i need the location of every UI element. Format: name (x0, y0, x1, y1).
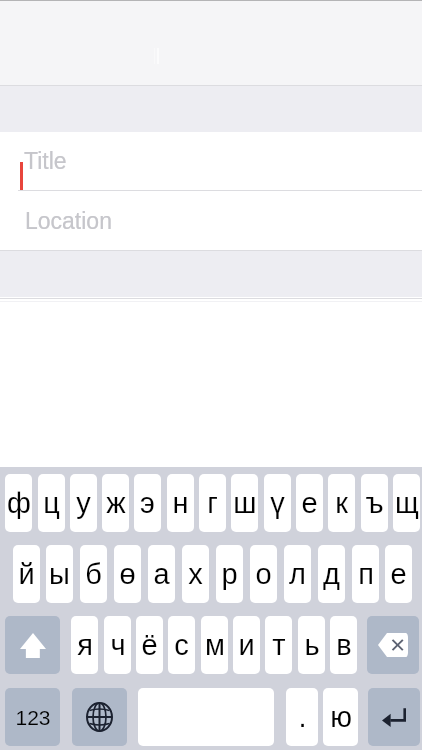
button[interactable]: л (284, 545, 311, 603)
button[interactable]: с (168, 616, 195, 674)
staticText: . (298, 701, 307, 733)
button[interactable]: Backspace (367, 616, 419, 674)
button[interactable]: ш (231, 474, 258, 532)
staticText: й (18, 558, 35, 590)
staticText: 123 (15, 706, 51, 729)
staticText: о (255, 558, 272, 590)
button[interactable]: 123 (5, 688, 60, 746)
staticText: к (335, 487, 348, 519)
button[interactable] (0, 0, 422, 85)
button[interactable]: о (250, 545, 277, 603)
button[interactable]: е (296, 474, 323, 532)
staticText: с (174, 629, 189, 661)
button[interactable]: н (167, 474, 194, 532)
staticText: е (390, 558, 407, 590)
button[interactable]: и (233, 616, 260, 674)
button[interactable]: ё (136, 616, 163, 674)
button[interactable]: к (328, 474, 355, 532)
button[interactable]: р (216, 545, 243, 603)
staticText: ш (233, 487, 257, 519)
staticText: Location (25, 208, 112, 234)
staticText: ц (43, 487, 60, 519)
button[interactable]: Shift (5, 616, 60, 674)
staticText: а (153, 558, 170, 590)
staticText: г (207, 487, 218, 519)
staticText: ъ (365, 487, 384, 519)
button[interactable]: э (134, 474, 161, 532)
staticText: щ (395, 487, 419, 519)
staticText: ь (304, 629, 320, 661)
button[interactable]: ы (46, 545, 73, 603)
button[interactable]: Return (368, 688, 420, 746)
button[interactable]: х (182, 545, 209, 603)
button[interactable]: ф (5, 474, 32, 532)
button[interactable]: д (318, 545, 345, 603)
button[interactable]: й (13, 545, 40, 603)
button[interactable]: у (70, 474, 97, 532)
staticText: я (77, 629, 93, 661)
staticText: х (188, 558, 203, 590)
button[interactable]: ү (264, 474, 291, 532)
button[interactable]: т (265, 616, 292, 674)
button[interactable]: а (148, 545, 175, 603)
staticText: ю (330, 701, 352, 733)
staticText: ө (119, 558, 136, 590)
staticText: ч (110, 629, 126, 661)
button[interactable]: щ (393, 474, 420, 532)
staticText: в (336, 629, 352, 661)
staticText: р (221, 558, 238, 590)
button[interactable]: в (330, 616, 357, 674)
staticText: е (301, 487, 318, 519)
button[interactable]: ь (298, 616, 325, 674)
button[interactable]: . (286, 688, 318, 746)
staticText: б (85, 558, 102, 590)
staticText: и (238, 629, 255, 661)
staticText: ж (106, 487, 126, 519)
staticText: ф (7, 487, 31, 519)
button[interactable]: ж (102, 474, 129, 532)
staticText: ы (49, 558, 70, 590)
button[interactable]: Location (0, 191, 422, 250)
button[interactable]: ю (323, 688, 358, 746)
button[interactable]: м (201, 616, 228, 674)
button[interactable]: ө (114, 545, 141, 603)
staticText: д (323, 558, 340, 590)
staticText: т (272, 629, 286, 661)
staticText: ё (141, 629, 158, 661)
staticText: у (76, 487, 91, 519)
staticText: л (289, 558, 306, 590)
button[interactable]: Change keyboard language (72, 688, 127, 746)
staticText: ү (270, 487, 285, 519)
button[interactable]: п (352, 545, 379, 603)
staticText: Title (24, 148, 67, 174)
staticText: н (172, 487, 189, 519)
staticText: м (205, 629, 225, 661)
staticText: э (140, 487, 155, 519)
button[interactable]: б (80, 545, 107, 603)
button[interactable]: Title (0, 132, 422, 190)
button[interactable]: ч (104, 616, 131, 674)
staticText: п (358, 558, 374, 590)
button[interactable]: е (385, 545, 412, 603)
button[interactable]: г (199, 474, 226, 532)
button[interactable]: ъ (361, 474, 388, 532)
button[interactable]: ц (38, 474, 65, 532)
button[interactable]: я (71, 616, 98, 674)
